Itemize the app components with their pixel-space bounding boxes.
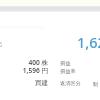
staticText: 1,625: [77, 32, 100, 52]
button[interactable]: 返済区分: [60, 80, 81, 87]
button[interactable]: 1,625: [77, 32, 100, 52]
staticText: 損益率: [60, 68, 76, 75]
staticText: 制: [93, 81, 98, 87]
staticText: 400 株: [28, 58, 48, 67]
staticText: 1,596 円: [22, 66, 48, 75]
staticText: 比: [0, 40, 3, 48]
button[interactable]: 損益: [60, 60, 71, 67]
button[interactable]: 損益率: [60, 68, 76, 75]
staticText: 損益: [60, 60, 71, 67]
button[interactable]: 1,596 円: [0, 66, 48, 75]
staticText: 買建: [34, 79, 48, 87]
button[interactable]: 400 株: [0, 58, 48, 67]
staticText: 返済区分: [60, 80, 81, 87]
button[interactable]: 買建: [0, 79, 48, 87]
